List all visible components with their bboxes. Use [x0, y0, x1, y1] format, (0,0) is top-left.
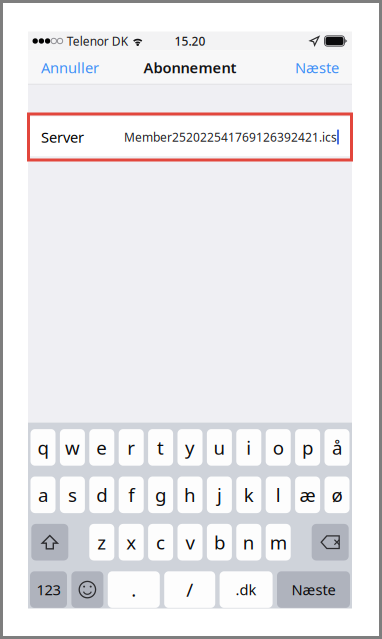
button[interactable]: u [207, 429, 232, 466]
staticText: a [38, 482, 48, 507]
staticText: e [96, 435, 107, 460]
staticText: Telenor DK [67, 33, 128, 49]
staticText: ø [331, 482, 342, 507]
button[interactable]: æ [295, 476, 320, 513]
button[interactable]: h [177, 476, 202, 513]
staticText: r [127, 435, 135, 460]
button[interactable]: k [236, 476, 261, 513]
button[interactable]: .dk [220, 571, 273, 608]
button[interactable]: i [236, 429, 261, 466]
button[interactable]: r [119, 429, 144, 466]
staticText: æ [300, 482, 316, 507]
staticText: Server [41, 127, 84, 147]
button[interactable]: w [60, 429, 85, 466]
button[interactable]: Emoji [71, 571, 103, 608]
button[interactable]: m [266, 524, 291, 560]
button[interactable]: / [164, 571, 215, 608]
button[interactable]: Annuller [34, 50, 106, 84]
staticText: q [37, 435, 48, 460]
button[interactable]: Delete [312, 524, 349, 560]
button[interactable]: p [295, 429, 320, 466]
staticText: n [243, 530, 255, 555]
staticText: Annuller [41, 58, 99, 77]
button[interactable]: n [236, 524, 261, 560]
button[interactable]: g [148, 476, 173, 513]
staticText: Member252022541769126392421.ics [124, 129, 337, 145]
button[interactable]: z [89, 524, 114, 560]
staticText: i [246, 435, 251, 460]
staticText: .dk [236, 580, 257, 599]
button[interactable]: s [60, 476, 85, 513]
staticText: y [185, 435, 195, 460]
staticText: x [126, 530, 136, 555]
button[interactable]: t [148, 429, 173, 466]
staticText: l [276, 482, 281, 507]
staticText: j [217, 482, 222, 507]
staticText: w [65, 435, 80, 460]
staticText: Næste [291, 580, 335, 599]
staticText: z [97, 530, 106, 555]
button[interactable]: . [108, 571, 160, 608]
button[interactable]: y [177, 429, 202, 466]
staticText: Næste [295, 58, 339, 77]
staticText: b [214, 530, 225, 555]
staticText: å [332, 435, 342, 460]
staticText: o [273, 435, 284, 460]
button[interactable]: e [89, 429, 114, 466]
button[interactable]: d [89, 476, 114, 513]
staticText: v [185, 530, 194, 555]
staticText: 15.20 [174, 33, 205, 49]
button[interactable]: j [207, 476, 232, 513]
staticText: s [68, 482, 77, 507]
staticText: h [184, 482, 196, 507]
staticText: c [156, 530, 165, 555]
staticText: . [131, 577, 136, 602]
button[interactable]: Næste [277, 571, 350, 608]
staticText: m [270, 530, 287, 555]
staticText: 123 [36, 580, 60, 599]
button[interactable]: l [266, 476, 291, 513]
button[interactable]: x [119, 524, 144, 560]
staticText: d [96, 482, 107, 507]
staticText: / [186, 577, 193, 602]
button[interactable]: å [324, 429, 349, 466]
button[interactable]: Næste [288, 50, 346, 84]
staticText: f [128, 482, 134, 507]
button[interactable]: q [30, 429, 55, 466]
staticText: k [244, 482, 254, 507]
button[interactable]: ø [324, 476, 349, 513]
staticText: g [155, 482, 166, 507]
button[interactable]: c [148, 524, 173, 560]
staticText: Abonnement [143, 58, 236, 77]
button[interactable]: f [119, 476, 144, 513]
staticText: u [213, 435, 225, 460]
button[interactable]: 123 [30, 571, 67, 608]
button[interactable]: a [30, 476, 55, 513]
staticText: p [302, 435, 313, 460]
button[interactable]: o [266, 429, 291, 466]
button[interactable]: b [207, 524, 232, 560]
button[interactable]: v [177, 524, 202, 560]
staticText: t [157, 435, 164, 460]
button[interactable]: Shift [31, 524, 68, 560]
